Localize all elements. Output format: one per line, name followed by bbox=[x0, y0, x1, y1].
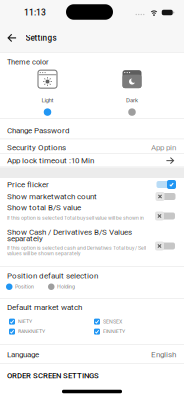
button[interactable]: NIFTY bbox=[9, 318, 32, 325]
button[interactable]: Change Password bbox=[0, 124, 184, 137]
staticText: Position bbox=[15, 284, 34, 290]
staticText: If this option is selected cash and Deri… bbox=[7, 245, 146, 251]
staticText: English bbox=[151, 350, 176, 359]
button[interactable]: Light bbox=[38, 70, 57, 116]
staticText: 11:13 bbox=[24, 7, 46, 17]
staticText: Theme color bbox=[7, 57, 49, 66]
button[interactable]: Price flicker on bbox=[156, 179, 176, 189]
button[interactable]: Dark bbox=[122, 70, 141, 116]
staticText: Holding bbox=[57, 284, 75, 290]
staticText: ORDER SCREEN SETTINGS bbox=[7, 371, 99, 380]
staticText: Change Password bbox=[7, 126, 70, 135]
button[interactable]: Show marketwatch count off bbox=[156, 191, 176, 201]
staticText: Security Options bbox=[7, 143, 66, 152]
staticText: Light bbox=[41, 97, 53, 104]
staticText: SENSEX bbox=[103, 318, 122, 325]
staticText: Language bbox=[7, 350, 39, 359]
staticText: separately bbox=[7, 234, 43, 243]
staticText: App pin bbox=[151, 143, 176, 152]
button[interactable]: Security Options bbox=[0, 141, 184, 154]
staticText: FINNIFTY bbox=[103, 328, 125, 335]
staticText: Settings bbox=[25, 33, 56, 43]
staticText: If this option is selected Total buy sel… bbox=[7, 215, 144, 221]
staticText: Show Cash / Derivatives B/S Values bbox=[7, 227, 132, 237]
staticText: App lock timeout :10 Min bbox=[7, 156, 94, 165]
staticText: Default market watch bbox=[7, 302, 82, 312]
button[interactable]: SENSEX bbox=[94, 318, 122, 325]
button[interactable]: Language bbox=[0, 348, 184, 361]
button[interactable]: Show Cash / Derivatives B/S Values separ… bbox=[155, 241, 175, 251]
button[interactable]: Holding bbox=[48, 283, 75, 290]
button[interactable]: Back bbox=[5, 31, 19, 44]
button[interactable]: Position bbox=[6, 283, 34, 290]
staticText: Show total B/S value bbox=[7, 203, 81, 212]
staticText: NIFTY bbox=[18, 318, 32, 325]
button[interactable]: Show total B/S value off bbox=[155, 211, 175, 221]
staticText: values will be shown separately bbox=[7, 250, 80, 257]
staticText: Show marketwatch count bbox=[7, 192, 97, 201]
staticText: BANKNIFTY bbox=[18, 328, 45, 335]
staticText: Dark bbox=[126, 97, 138, 104]
button[interactable]: BANKNIFTY bbox=[9, 328, 45, 335]
staticText: Position default selection bbox=[7, 271, 98, 280]
button[interactable]: App lock timeout :10 Min bbox=[0, 154, 184, 167]
button[interactable]: FINNIFTY bbox=[94, 328, 125, 335]
staticText: Price flicker bbox=[7, 180, 49, 189]
